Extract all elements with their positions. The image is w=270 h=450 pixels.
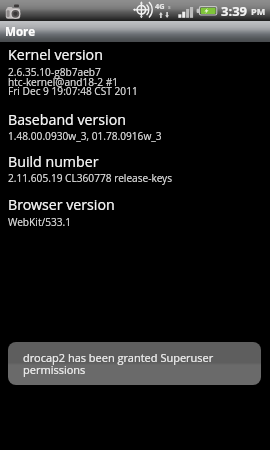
staticText: permissions [23, 362, 86, 377]
staticText: Baseband version [8, 110, 126, 129]
button[interactable]: More [0, 21, 270, 42]
staticText: drocap2 has been granted Superuser [23, 350, 214, 365]
staticText: htc-kernel@and18-2 #1 [8, 75, 119, 89]
staticText: Browser version [8, 195, 115, 214]
staticText: s [168, 3, 171, 10]
staticText: PM [251, 5, 266, 17]
staticText: 1.48.00.0930w_3, 01.78.0916w_3 [8, 129, 162, 143]
staticText: Kernel version [8, 45, 103, 64]
staticText: 3:39 [221, 2, 247, 20]
staticText: More [5, 24, 35, 40]
staticText: Fri Dec 9 19:07:48 CST 2011 [8, 84, 138, 98]
staticText: WebKit/533.1 [8, 215, 72, 229]
staticText: 2.11.605.19 CL360778 release-keys [8, 171, 173, 185]
staticText: Build number [8, 152, 99, 171]
staticText: 2.6.35.10-g8b7aeb7 [8, 65, 101, 79]
staticText: 4G [155, 1, 165, 11]
